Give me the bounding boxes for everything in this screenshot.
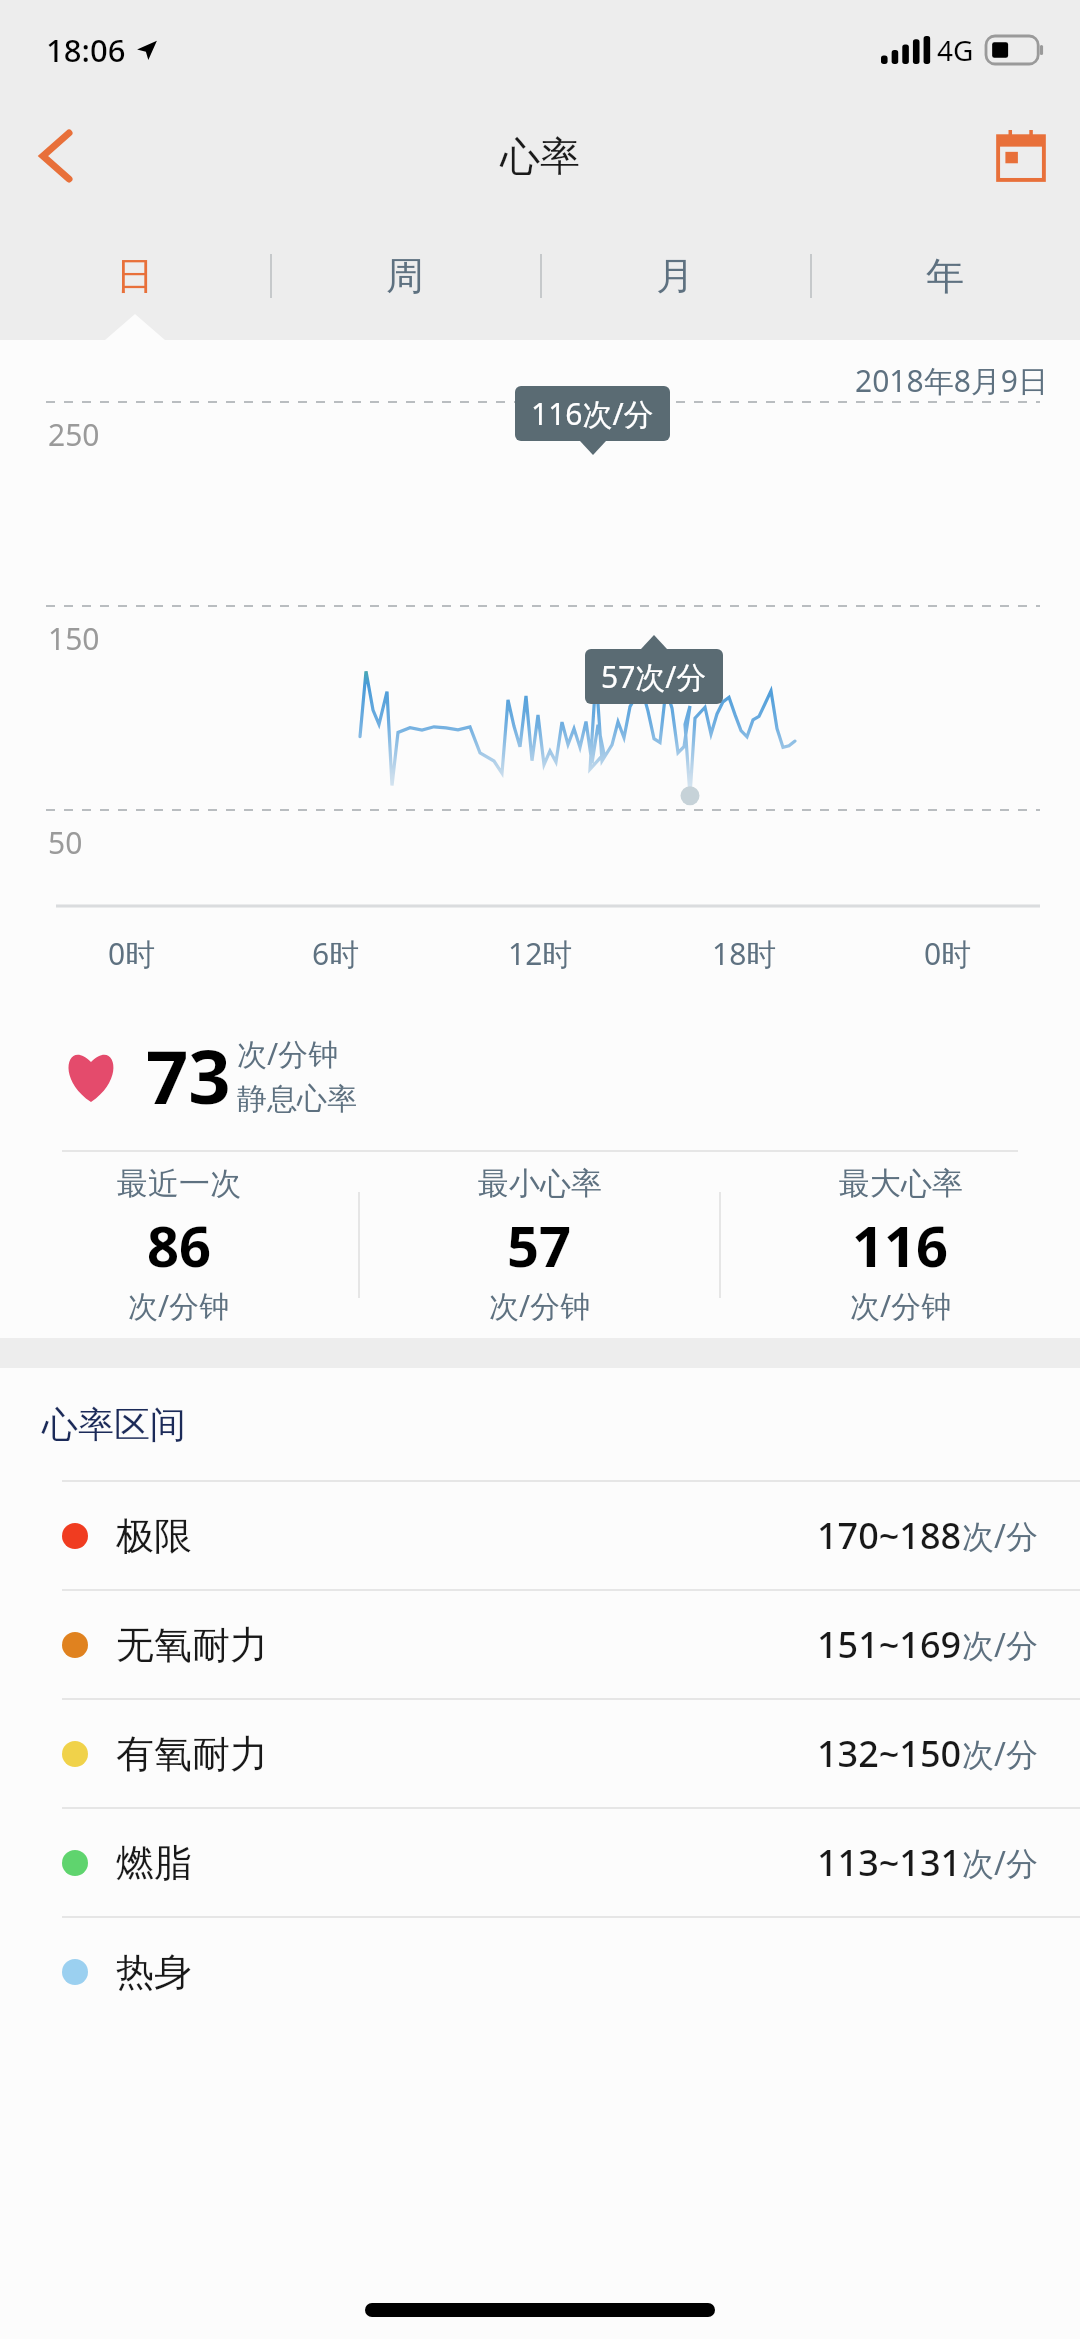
button[interactable]: 热身 (0, 1918, 1080, 2025)
staticText: 热身 (116, 1948, 192, 1996)
staticText: 57 (507, 1207, 572, 1283)
staticText: 心率区间 (42, 1402, 186, 1447)
staticText: 次/分 (962, 1623, 1038, 1667)
button[interactable]: 极限 (0, 1482, 1080, 1589)
staticText: 116 (852, 1207, 949, 1283)
staticText: 有氧耐力 (116, 1730, 268, 1778)
staticText: 次/分钟 (489, 1285, 591, 1326)
button[interactable]: 最大心率 (721, 1164, 1080, 1326)
button[interactable]: 最近一次 (0, 1164, 358, 1326)
staticText: 0时 (924, 933, 972, 974)
button[interactable]: Back (18, 118, 94, 194)
button[interactable]: 月 (540, 212, 810, 340)
staticText: 170~188 (817, 1511, 962, 1560)
staticText: 次/分 (962, 1841, 1038, 1885)
button[interactable]: 最小心率 (360, 1164, 719, 1326)
staticText: 最小心率 (478, 1164, 602, 1203)
staticText: 周 (386, 252, 424, 300)
button[interactable]: 有氧耐力 (0, 1700, 1080, 1807)
staticText: 最大心率 (839, 1164, 963, 1203)
button[interactable]: 无氧耐力 (0, 1591, 1080, 1698)
staticText: 2018年8月9日 (855, 360, 1048, 401)
staticText: 116次/分 (531, 393, 654, 434)
staticText: 极限 (116, 1512, 192, 1560)
staticText: 次/分 (962, 1732, 1038, 1776)
staticText: 4G (937, 31, 974, 69)
button[interactable]: 年 (810, 212, 1080, 340)
button[interactable]: 周 (270, 212, 540, 340)
staticText: 月 (656, 252, 694, 300)
button[interactable]: Calendar (982, 117, 1060, 195)
staticText: 18时 (712, 933, 777, 974)
staticText: 次/分 (962, 1514, 1038, 1558)
staticText: 132~150 (817, 1729, 962, 1778)
staticText: 18:06 (46, 29, 126, 71)
button[interactable]: 日 (0, 212, 270, 340)
staticText: 86 (147, 1207, 212, 1283)
staticText: 151~169 (817, 1620, 962, 1669)
staticText: 12时 (508, 933, 573, 974)
staticText: 113~131 (817, 1838, 962, 1887)
staticText: 250 (48, 414, 100, 455)
staticText: 年 (926, 252, 964, 300)
button[interactable]: 燃脂 (0, 1809, 1080, 1916)
staticText: 无氧耐力 (116, 1621, 268, 1669)
staticText: 73 (146, 1025, 231, 1126)
staticText: 150 (48, 618, 100, 659)
staticText: 0时 (108, 933, 156, 974)
staticText: 次/分钟 (850, 1285, 952, 1326)
staticText: 6时 (312, 933, 360, 974)
staticText: 心率 (500, 131, 580, 181)
staticText: 静息心率 (237, 1080, 357, 1118)
staticText: 次/分钟 (128, 1285, 230, 1326)
staticText: 57次/分 (601, 656, 707, 697)
staticText: 燃脂 (116, 1839, 192, 1887)
staticText: 50 (48, 822, 83, 863)
staticText: 次/分钟 (237, 1033, 339, 1074)
staticText: 日 (116, 252, 154, 300)
staticText: 最近一次 (117, 1164, 241, 1203)
